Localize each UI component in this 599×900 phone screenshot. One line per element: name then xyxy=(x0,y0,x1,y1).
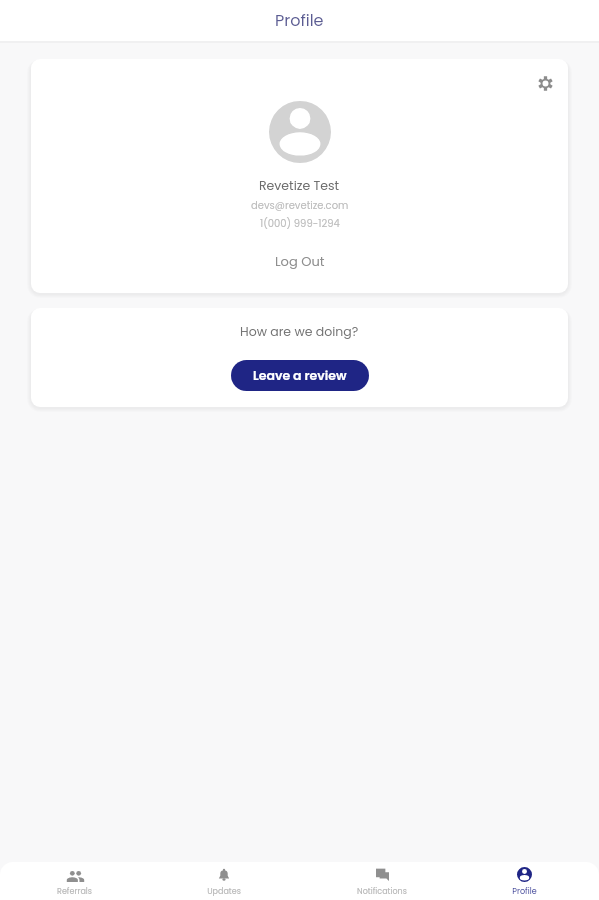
button[interactable]: Updates xyxy=(149,862,299,900)
staticText: devs@revetize.com xyxy=(251,198,349,212)
staticText: Updates xyxy=(207,886,241,897)
staticText: Log Out xyxy=(275,252,325,270)
staticText: Revetize Test xyxy=(259,177,340,194)
button[interactable]: Profile xyxy=(449,862,599,900)
staticText: How are we doing? xyxy=(240,323,359,340)
staticText: Profile xyxy=(512,886,537,897)
staticText: Profile xyxy=(275,9,324,31)
staticText: Leave a review xyxy=(253,367,347,384)
staticText: 1(000) 999-1294 xyxy=(260,216,340,230)
staticText: Notifications xyxy=(357,886,407,897)
button[interactable]: Log Out xyxy=(259,247,341,275)
button[interactable]: Referrals xyxy=(0,862,149,900)
staticText: Referrals xyxy=(57,886,92,897)
button[interactable]: Leave a review xyxy=(231,360,369,391)
button[interactable]: Notifications xyxy=(307,862,457,900)
button[interactable]: Settings xyxy=(528,66,562,100)
